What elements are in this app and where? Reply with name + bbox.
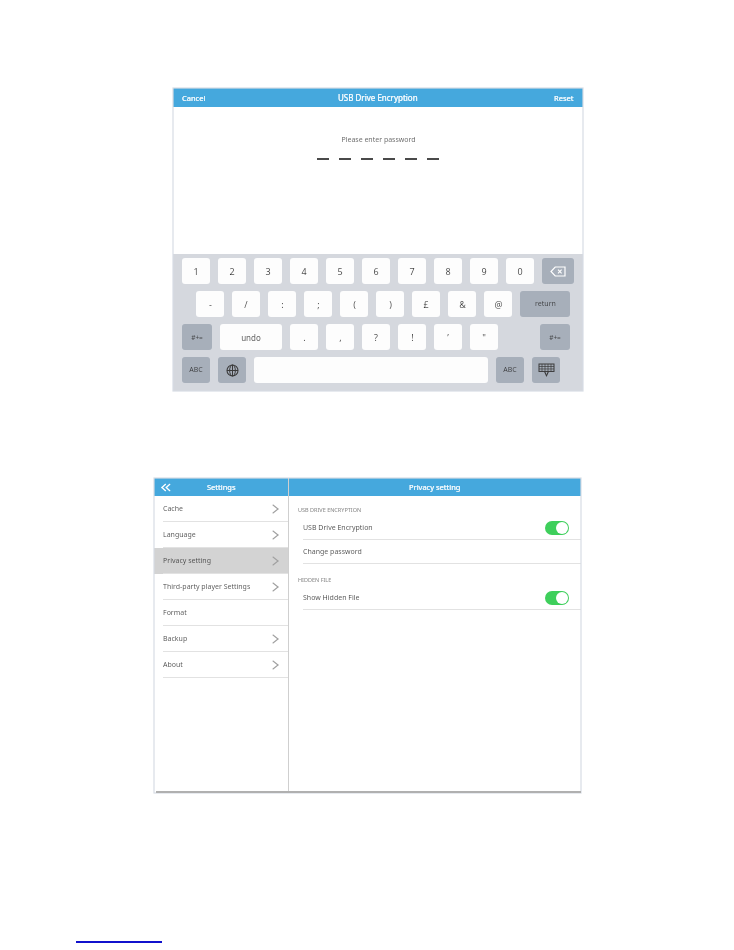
staticText: 7 xyxy=(409,265,415,277)
staticText: @ xyxy=(494,298,503,310)
button[interactable]: ) xyxy=(376,291,404,317)
staticText: Language xyxy=(163,530,196,540)
button[interactable]: ABC xyxy=(182,357,210,383)
button[interactable]: Change password xyxy=(289,540,581,564)
button[interactable]: 9 xyxy=(470,258,498,284)
staticText: 5 xyxy=(337,265,343,277)
button[interactable]: 1 xyxy=(182,258,210,284)
staticText: ’ xyxy=(447,331,449,343)
button[interactable]: #+= xyxy=(540,324,570,350)
button[interactable]: Cache xyxy=(154,496,288,522)
button[interactable]: ! xyxy=(398,324,426,350)
staticText: - xyxy=(209,298,212,310)
staticText: / xyxy=(244,298,248,310)
button[interactable]: ABC xyxy=(496,357,524,383)
button[interactable]: Show Hidden File xyxy=(289,586,581,610)
button[interactable]: ( xyxy=(340,291,368,317)
button[interactable]: 0 xyxy=(506,258,534,284)
button[interactable]: Delete xyxy=(542,258,574,284)
button[interactable]: 4 xyxy=(290,258,318,284)
staticText: : xyxy=(281,298,284,310)
button[interactable]: undo xyxy=(220,324,282,350)
staticText: ABC xyxy=(503,365,517,375)
button[interactable]: Change keyboard language xyxy=(218,357,246,383)
staticText: return xyxy=(535,299,556,309)
staticText: HIDDEN FILE xyxy=(298,576,332,583)
staticText: Reset xyxy=(554,93,574,103)
staticText: 1 xyxy=(193,265,199,277)
staticText: Privacy setting xyxy=(409,482,461,492)
button[interactable]: £ xyxy=(412,291,440,317)
staticText: ! xyxy=(411,331,414,343)
button[interactable]: ’ xyxy=(434,324,462,350)
button[interactable]: . xyxy=(290,324,318,350)
button[interactable]: & xyxy=(448,291,476,317)
staticText: 8 xyxy=(445,265,451,277)
staticText: " xyxy=(482,331,486,343)
button[interactable]: : xyxy=(268,291,296,317)
staticText: ABC xyxy=(189,365,203,375)
staticText: 4 xyxy=(301,265,307,277)
staticText: undo xyxy=(241,332,261,343)
staticText: ) xyxy=(389,298,392,310)
button[interactable]: Language xyxy=(154,522,288,548)
staticText: ? xyxy=(374,331,378,343)
button[interactable]: 6 xyxy=(362,258,390,284)
button[interactable]: Third-party player Settings xyxy=(154,574,288,600)
staticText: 2 xyxy=(229,265,235,277)
staticText: Settings xyxy=(207,482,236,492)
button[interactable]: 2 xyxy=(218,258,246,284)
button[interactable]: 5 xyxy=(326,258,354,284)
button[interactable]: " xyxy=(470,324,498,350)
button[interactable]: Format xyxy=(154,600,288,626)
staticText: £ xyxy=(423,298,429,310)
button[interactable]: Toggle on xyxy=(545,591,569,605)
button[interactable]: #+= xyxy=(182,324,212,350)
staticText: USB Drive Encryption xyxy=(338,92,418,103)
button[interactable]: , xyxy=(326,324,354,350)
staticText: Please enter password xyxy=(341,135,416,145)
staticText: #+= xyxy=(191,333,203,342)
button[interactable]: Back xyxy=(159,480,173,494)
button[interactable]: ; xyxy=(304,291,332,317)
staticText: USB Drive Encryption xyxy=(303,523,373,533)
button[interactable]: 7 xyxy=(398,258,426,284)
staticText: USB DRIVE ENCRYPTION xyxy=(298,506,362,513)
staticText: 3 xyxy=(265,265,271,277)
staticText: 9 xyxy=(481,265,487,277)
button[interactable]: 8 xyxy=(434,258,462,284)
button[interactable]: - xyxy=(196,291,224,317)
button[interactable]: About xyxy=(154,652,288,678)
button[interactable]: Cancel xyxy=(179,90,209,106)
staticText: Third-party player Settings xyxy=(163,582,251,592)
button[interactable]: / xyxy=(232,291,260,317)
staticText: Privacy setting xyxy=(163,556,211,566)
staticText: Show Hidden File xyxy=(303,593,360,603)
staticText: Change password xyxy=(303,547,362,557)
staticText: & xyxy=(459,298,466,310)
staticText: 6 xyxy=(373,265,379,277)
button[interactable]: Privacy setting xyxy=(154,548,288,574)
button[interactable]: Hide keyboard xyxy=(532,357,560,383)
staticText: ( xyxy=(353,298,356,310)
button[interactable]: 3 xyxy=(254,258,282,284)
staticText: ; xyxy=(317,298,320,310)
staticText: 0 xyxy=(517,265,523,277)
staticText: Cache xyxy=(163,504,183,514)
button[interactable]: ? xyxy=(362,324,390,350)
button[interactable]: @ xyxy=(484,291,512,317)
staticText: #+= xyxy=(549,333,561,342)
staticText: , xyxy=(339,331,342,343)
staticText: Cancel xyxy=(182,93,206,103)
staticText: Backup xyxy=(163,634,188,644)
staticText: About xyxy=(163,660,183,670)
button[interactable]: return xyxy=(520,291,570,317)
button[interactable]: Toggle on xyxy=(545,521,569,535)
button[interactable]: USB Drive Encryption xyxy=(289,516,581,540)
staticText: Format xyxy=(163,608,187,618)
staticText: . xyxy=(303,331,306,343)
button[interactable]: Backup xyxy=(154,626,288,652)
button[interactable]: Reset xyxy=(551,90,577,106)
